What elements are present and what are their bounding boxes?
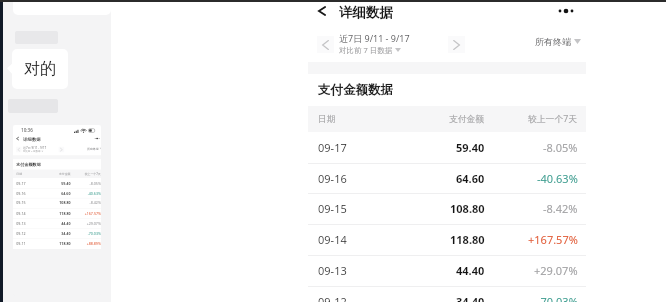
- staticText: 44.40: [61, 221, 71, 226]
- staticText: +29.07%: [534, 263, 578, 278]
- staticText: 09-15: [318, 201, 347, 216]
- button[interactable]: 09-14: [13, 208, 101, 218]
- button[interactable]: 09-16: [308, 163, 586, 194]
- staticText: 详细数据: [23, 136, 41, 142]
- staticText: 64.60: [456, 171, 485, 186]
- staticText: 09-17: [318, 140, 347, 155]
- staticText: -40.63%: [537, 171, 578, 186]
- button[interactable]: 所有终端: [535, 36, 581, 47]
- staticText: 34.40: [456, 294, 485, 302]
- button[interactable]: 09-16: [13, 188, 101, 198]
- staticText: 详细数据: [339, 4, 393, 21]
- staticText: 对比前 7 日数据: [23, 150, 41, 153]
- button[interactable]: 09-17: [308, 132, 586, 163]
- button[interactable]: 09-17: [13, 178, 101, 188]
- staticText: 近7日 9/11 - 9/17: [339, 32, 410, 44]
- staticText: 59.40: [61, 181, 71, 185]
- staticText: -8.05%: [90, 181, 101, 185]
- button[interactable]: 09-11: [13, 238, 101, 248]
- staticText: 较上一个7天: [528, 113, 578, 125]
- staticText: 09-16: [16, 191, 26, 196]
- staticText: -70.03%: [88, 231, 101, 236]
- staticText: -8.05%: [543, 140, 578, 155]
- staticText: +29.07%: [87, 221, 101, 226]
- button[interactable]: 上一周期: [16, 147, 21, 152]
- button[interactable]: 聊天图片: [13, 125, 101, 296]
- staticText: 09-13: [16, 221, 26, 226]
- staticText: 09-12: [318, 294, 347, 302]
- staticText: 118.80: [450, 232, 485, 247]
- staticText: 09-14: [16, 211, 26, 215]
- staticText: 09-16: [318, 171, 347, 186]
- button[interactable]: 更多: [94, 135, 101, 142]
- staticText: 支付金额数据: [318, 82, 393, 98]
- staticText: 09-11: [16, 241, 26, 245]
- staticText: 59.40: [456, 140, 485, 155]
- button[interactable]: 下一周期: [59, 147, 64, 152]
- staticText: 对比前 7 日数据: [339, 45, 393, 55]
- staticText: 108.80: [450, 201, 485, 216]
- staticText: 34.40: [61, 231, 71, 236]
- button[interactable]: 09-15: [308, 193, 586, 224]
- staticText: 44.40: [456, 263, 485, 278]
- staticText: +167.57%: [528, 232, 578, 247]
- staticText: 09-17: [16, 181, 26, 185]
- staticText: +88.89%: [87, 241, 101, 245]
- staticText: 所有终端: [535, 36, 571, 47]
- staticText: 较上一个7天: [85, 172, 101, 176]
- button[interactable]: 09-14: [308, 224, 586, 255]
- staticText: 所有终端: [87, 147, 99, 150]
- staticText: 09-14: [318, 232, 347, 247]
- staticText: 日期: [16, 172, 22, 176]
- staticText: 09-12: [16, 231, 26, 236]
- staticText: 10:36: [21, 127, 33, 133]
- button[interactable]: 09-12: [308, 286, 586, 302]
- staticText: 对的: [24, 59, 56, 79]
- staticText: -70.03%: [537, 294, 578, 302]
- button[interactable]: 对的: [12, 49, 68, 89]
- button[interactable]: 09-12: [13, 228, 101, 238]
- staticText: 09-15: [16, 200, 26, 205]
- button[interactable]: 09-13: [308, 255, 586, 286]
- button[interactable]: 返回: [310, 1, 334, 21]
- button[interactable]: 更多: [556, 1, 578, 21]
- button[interactable]: 近7日 9/11 - 9/17: [339, 32, 410, 55]
- staticText: 支付金额数据: [16, 162, 41, 167]
- staticText: -8.42%: [543, 201, 578, 216]
- staticText: 近7日 9/11 - 9/17: [23, 145, 46, 149]
- button[interactable]: 下一周期: [448, 36, 465, 53]
- button[interactable]: 09-13: [13, 218, 101, 228]
- staticText: 118.80: [59, 211, 71, 215]
- staticText: 64.60: [61, 191, 71, 196]
- staticText: 09-13: [318, 263, 347, 278]
- staticText: 108.80: [59, 200, 71, 205]
- staticText: 支付金额: [449, 114, 485, 125]
- button[interactable]: 近7日 9/11 - 9/17: [23, 145, 46, 153]
- staticText: 118.80: [59, 241, 71, 245]
- staticText: +167.57%: [85, 211, 101, 215]
- button[interactable]: 上一周期: [317, 36, 334, 53]
- staticText: 日期: [318, 114, 336, 125]
- button[interactable]: 所有终端: [87, 147, 101, 150]
- staticText: 支付金额: [59, 172, 71, 176]
- staticText: -8.42%: [90, 200, 101, 205]
- staticText: -40.63%: [88, 191, 101, 196]
- button[interactable]: 返回: [14, 135, 21, 142]
- button[interactable]: 09-15: [13, 198, 101, 208]
